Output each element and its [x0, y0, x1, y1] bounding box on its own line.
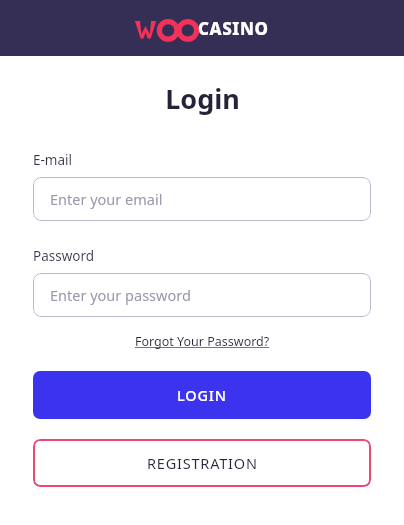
- button[interactable]: Forgot Your Password?: [133, 331, 272, 352]
- staticText: E-mail: [33, 151, 73, 169]
- staticText: LOGIN: [177, 385, 227, 405]
- other: Woo Casino: [135, 18, 193, 40]
- button[interactable]: Enter your password: [33, 273, 371, 317]
- staticText: Enter your email: [50, 189, 163, 209]
- staticText: CASINO: [198, 17, 269, 40]
- button[interactable]: Enter your email: [33, 177, 371, 221]
- staticText: Enter your password: [50, 285, 191, 305]
- staticText: REGISTRATION: [147, 453, 258, 473]
- staticText: Password: [33, 247, 95, 265]
- button[interactable]: REGISTRATION: [33, 439, 371, 487]
- staticText: Login: [165, 80, 240, 117]
- staticText: Forgot Your Password?: [135, 333, 270, 350]
- button[interactable]: LOGIN: [33, 371, 371, 419]
